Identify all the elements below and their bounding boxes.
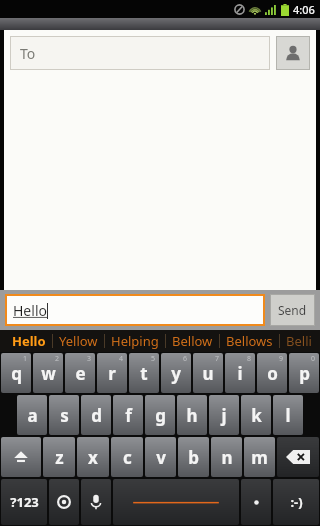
staticText: v	[156, 446, 166, 469]
button[interactable]: Settings	[49, 479, 79, 525]
staticText: Helping	[111, 332, 159, 350]
button[interactable]: k	[241, 395, 271, 435]
button[interactable]: Shift	[1, 437, 41, 477]
staticText: k	[251, 404, 262, 427]
staticText: Bellows	[226, 332, 273, 350]
staticText: w	[41, 362, 56, 385]
button[interactable]: Hello	[6, 332, 52, 350]
button[interactable]: Hello	[5, 294, 265, 326]
button[interactable]: x	[77, 437, 109, 477]
button[interactable]: 0	[289, 353, 319, 393]
staticText: ?123	[10, 493, 39, 511]
staticText: n	[221, 446, 233, 469]
button[interactable]: b	[178, 437, 209, 477]
button[interactable]: Belli	[280, 332, 318, 350]
button[interactable]: Voice input	[81, 479, 111, 525]
button[interactable]: s	[49, 395, 79, 435]
staticText: 0	[311, 354, 316, 364]
staticText: h	[186, 404, 198, 427]
button[interactable]: n	[211, 437, 242, 477]
button[interactable]: 3	[65, 353, 95, 393]
button[interactable]: d	[81, 395, 111, 435]
button[interactable]: g	[145, 395, 175, 435]
staticText: q	[11, 362, 22, 385]
staticText: Yellow	[59, 332, 98, 350]
button[interactable]: :-)	[273, 479, 319, 525]
button[interactable]: Period	[241, 479, 271, 525]
button[interactable]: 8	[225, 353, 255, 393]
button[interactable]: f	[113, 395, 143, 435]
staticText: a	[27, 404, 38, 427]
staticText: x	[88, 446, 98, 469]
button[interactable]: Send	[270, 294, 315, 326]
staticText: z	[55, 446, 64, 469]
staticText: 9	[279, 354, 284, 364]
button[interactable]: j	[209, 395, 239, 435]
staticText: u	[202, 362, 214, 385]
staticText: 4:06	[293, 2, 315, 17]
staticText: :-)	[290, 493, 303, 511]
staticText: Send	[278, 302, 307, 318]
button[interactable]: Bellows	[220, 332, 279, 350]
staticText: 6	[183, 354, 188, 364]
staticText: f	[125, 404, 132, 427]
staticText: d	[91, 404, 102, 427]
staticText: Hello	[12, 332, 46, 350]
button[interactable]: Helping	[105, 332, 165, 350]
button[interactable]: 9	[257, 353, 287, 393]
button[interactable]: z	[43, 437, 75, 477]
button[interactable]: To	[10, 36, 270, 70]
staticText: m	[251, 446, 268, 469]
staticText: b	[188, 446, 199, 469]
button[interactable]: v	[145, 437, 176, 477]
staticText: o	[267, 362, 278, 385]
staticText: 4	[119, 354, 124, 364]
button[interactable]: Yellow	[53, 332, 104, 350]
staticText: Hello	[13, 301, 47, 320]
staticText: c	[123, 446, 132, 469]
button[interactable]: c	[111, 437, 143, 477]
staticText: t	[140, 362, 148, 385]
button[interactable]: Space	[113, 479, 239, 525]
staticText: Belli	[286, 332, 312, 350]
staticText: 3	[87, 354, 92, 364]
staticText: e	[75, 362, 86, 385]
staticText: To	[20, 44, 36, 63]
button[interactable]: 2	[33, 353, 63, 393]
button[interactable]: a	[17, 395, 47, 435]
staticText: j	[221, 404, 227, 427]
button[interactable]: h	[177, 395, 207, 435]
staticText: l	[285, 404, 291, 427]
staticText: p	[299, 362, 310, 385]
staticText: y	[171, 362, 181, 385]
staticText: Bellow	[172, 332, 213, 350]
button[interactable]: Bellow	[166, 332, 219, 350]
button[interactable]: Pick contact	[276, 36, 310, 70]
button[interactable]: 1	[1, 353, 31, 393]
button[interactable]: 6	[161, 353, 191, 393]
button[interactable]: 4	[97, 353, 127, 393]
staticText: 8	[247, 354, 252, 364]
staticText: s	[60, 404, 69, 427]
staticText: g	[155, 404, 166, 427]
staticText: 2	[55, 354, 60, 364]
staticText: 1	[23, 354, 28, 364]
staticText: i	[237, 362, 243, 385]
button[interactable]: l	[273, 395, 303, 435]
staticText: r	[108, 362, 116, 385]
button[interactable]: m	[244, 437, 275, 477]
button[interactable]: 7	[193, 353, 223, 393]
button[interactable]: ?123	[1, 479, 47, 525]
button[interactable]: Backspace	[277, 437, 319, 477]
staticText: 5	[151, 354, 156, 364]
staticText: 7	[215, 354, 220, 364]
button[interactable]: 5	[129, 353, 159, 393]
